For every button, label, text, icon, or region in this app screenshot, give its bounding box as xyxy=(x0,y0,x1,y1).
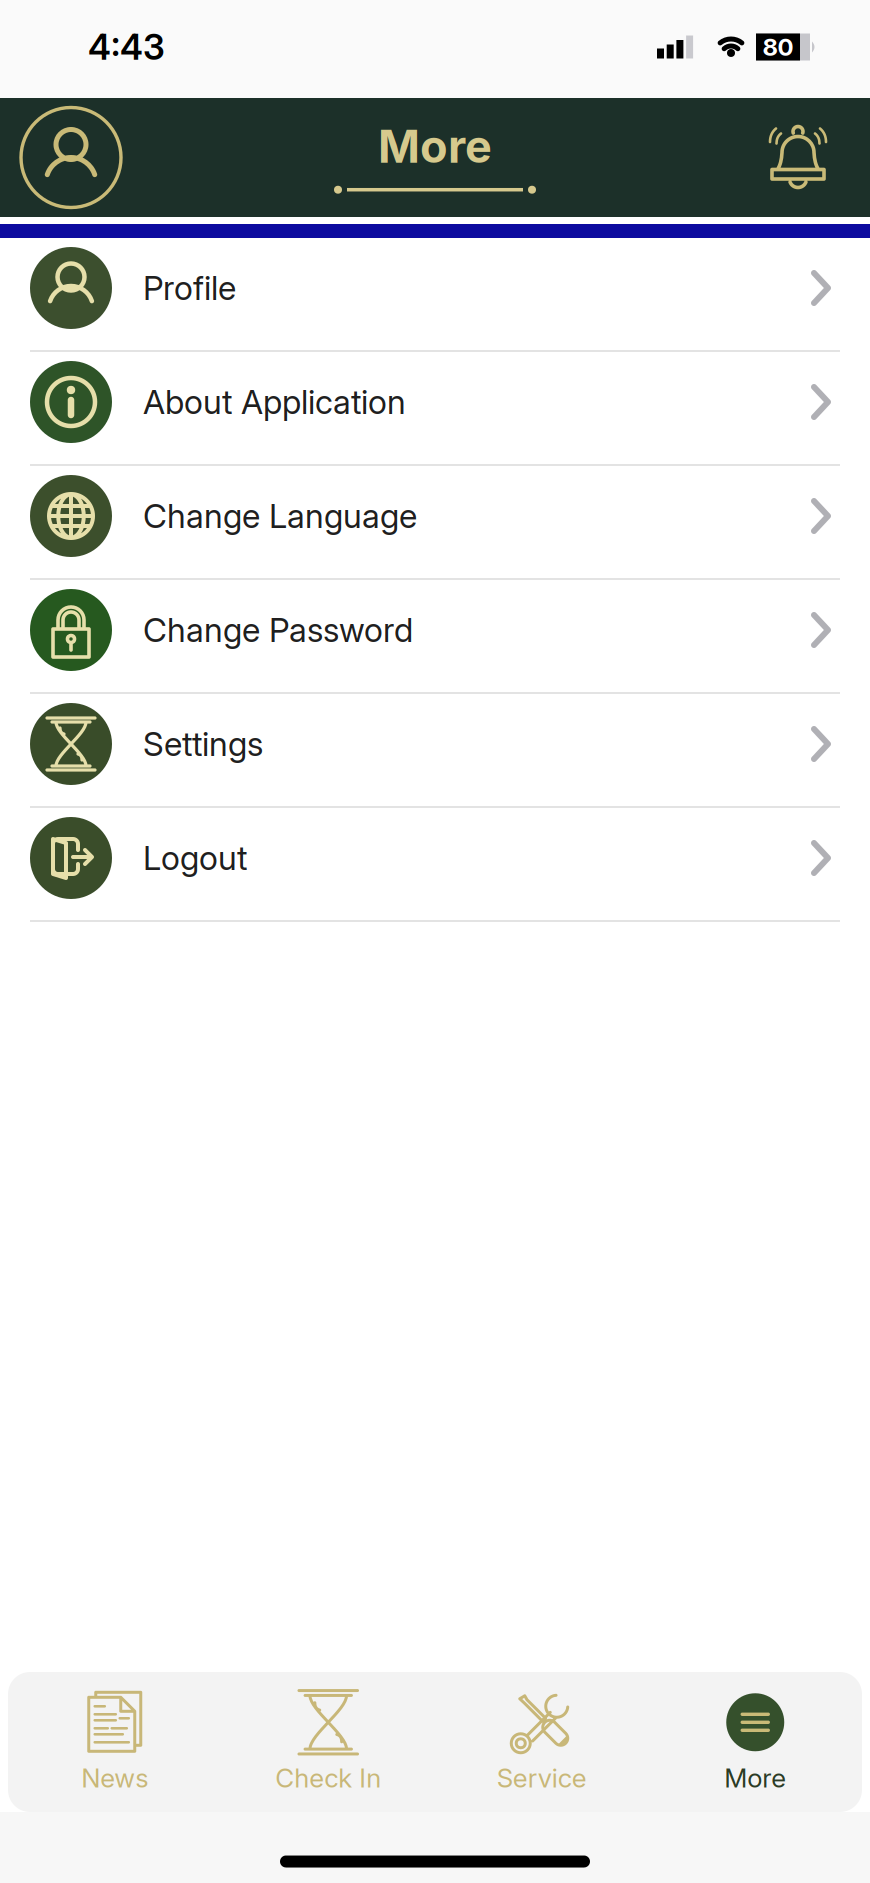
button[interactable]: About Application xyxy=(0,352,870,466)
staticText: Change Language xyxy=(143,496,417,536)
staticText: News xyxy=(81,1762,148,1794)
staticText: More xyxy=(724,1762,786,1794)
staticText: Settings xyxy=(143,724,263,764)
button[interactable]: Check In xyxy=(221,1672,435,1812)
button[interactable]: Change Password xyxy=(0,580,870,694)
staticText: Profile xyxy=(143,268,236,308)
button[interactable]: News xyxy=(8,1672,221,1812)
staticText: Logout xyxy=(143,838,247,878)
staticText: Change Password xyxy=(143,610,413,650)
staticText: 4:43 xyxy=(88,26,165,68)
button[interactable]: Settings xyxy=(0,694,870,808)
button[interactable]: Notifications xyxy=(766,120,830,194)
staticText: About Application xyxy=(143,382,406,422)
staticText: More xyxy=(378,119,492,174)
button[interactable]: Profile xyxy=(0,238,870,352)
staticText: 80 xyxy=(762,32,793,61)
button[interactable]: Profile xyxy=(20,106,122,208)
button[interactable]: More xyxy=(648,1672,862,1812)
button[interactable]: Change Language xyxy=(0,466,870,580)
button[interactable]: Logout xyxy=(0,808,870,922)
staticText: Check In xyxy=(275,1762,381,1794)
staticText: Service xyxy=(497,1762,587,1794)
button[interactable]: Service xyxy=(435,1672,648,1812)
